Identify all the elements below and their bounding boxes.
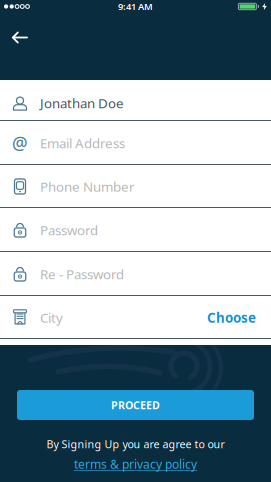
staticText: By Signing Up you are agree to our xyxy=(46,437,224,451)
button[interactable]: Jonathan Doe xyxy=(0,80,271,121)
staticText: Email Address xyxy=(40,134,125,152)
button[interactable]: City xyxy=(0,296,271,339)
staticText: 9:41 AM xyxy=(118,0,153,13)
staticText: Password xyxy=(40,221,98,239)
button[interactable]: Re - Password xyxy=(0,252,271,296)
staticText: Choose xyxy=(207,309,256,326)
button[interactable]: Password xyxy=(0,208,271,252)
staticText: Jonathan Doe xyxy=(40,94,124,112)
button[interactable]: terms & privacy policy xyxy=(74,451,197,472)
button[interactable]: Back xyxy=(0,13,27,43)
button[interactable]: PROCEED xyxy=(17,390,254,420)
button[interactable]: Choose xyxy=(207,309,271,326)
staticText: Phone Number xyxy=(40,178,135,195)
staticText: City xyxy=(40,309,63,326)
staticText: terms & privacy policy xyxy=(74,456,197,472)
button[interactable]: Phone Number xyxy=(0,165,271,208)
staticText: Re - Password xyxy=(40,265,124,283)
staticText: PROCEED xyxy=(111,398,160,412)
button[interactable]: Email Address xyxy=(0,121,271,165)
staticText: @ xyxy=(12,131,28,154)
